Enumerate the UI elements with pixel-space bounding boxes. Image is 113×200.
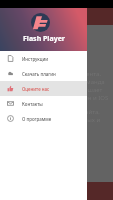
- staticText: Flash Player: [23, 34, 65, 44]
- staticText: Оцените нас: [22, 86, 50, 92]
- button[interactable]: Скачать плагин: [0, 66, 87, 81]
- button[interactable]: Инструкции: [0, 51, 87, 66]
- staticText: Контакты: [22, 101, 43, 107]
- button[interactable]: О программе: [0, 111, 87, 126]
- staticText: Инструкции: [22, 56, 49, 62]
- button[interactable]: Оцените нас: [0, 81, 87, 96]
- staticText: О программе: [22, 116, 52, 122]
- staticText: Скачать плагин: [22, 71, 56, 77]
- staticText: Установите для плагина сайта, откройте е…: [10, 108, 101, 124]
- staticText: Для просмотра этого контента, приложению…: [10, 70, 109, 102]
- button[interactable]: Контакты: [0, 96, 87, 111]
